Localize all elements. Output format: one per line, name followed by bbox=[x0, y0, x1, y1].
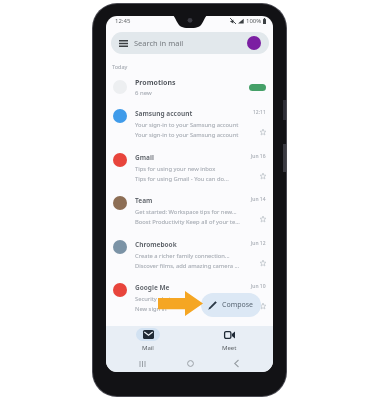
button[interactable]: Team bbox=[106, 191, 273, 234]
button[interactable]: Menu bbox=[111, 32, 269, 54]
staticText: Gmail bbox=[135, 153, 154, 162]
staticText: Mail bbox=[142, 344, 154, 352]
button[interactable]: Mail bbox=[132, 326, 164, 352]
staticText: Jun 16 bbox=[251, 153, 266, 160]
staticText: Jun 10 bbox=[251, 283, 266, 290]
staticText: Discover films, add amazing camera ... bbox=[135, 262, 240, 270]
staticText: Tips for using Gmail - You can do... bbox=[135, 175, 229, 183]
button[interactable]: Google Me bbox=[106, 278, 273, 321]
staticText: Compose bbox=[222, 300, 254, 310]
staticText: 6 new bbox=[135, 89, 152, 97]
staticText: 12:11 bbox=[253, 109, 266, 116]
button[interactable]: Recents bbox=[136, 357, 149, 370]
button[interactable]: Meet bbox=[213, 326, 245, 352]
button[interactable]: Account bbox=[247, 36, 261, 50]
staticText: Tips for using your new inbox bbox=[135, 165, 216, 173]
button[interactable]: Gmail bbox=[106, 148, 273, 191]
other: Menu bbox=[119, 40, 128, 47]
button[interactable]: Home bbox=[184, 357, 197, 370]
staticText: Today bbox=[112, 63, 128, 70]
staticText: Get started: Workspace tips for new... bbox=[135, 208, 237, 216]
staticText: Security alert bbox=[135, 295, 171, 303]
staticText: Google Me bbox=[135, 283, 170, 292]
staticText: Promotions bbox=[135, 78, 176, 88]
button[interactable]: Back bbox=[230, 357, 243, 370]
staticText: 12:45 bbox=[115, 17, 131, 25]
button[interactable]: Samsung account bbox=[106, 104, 273, 147]
staticText: Meet bbox=[222, 344, 237, 352]
staticText: Team bbox=[135, 196, 153, 205]
staticText: 100% bbox=[246, 17, 262, 25]
staticText: Create a richer family connection... bbox=[135, 252, 230, 260]
staticText: New sign in bbox=[135, 305, 167, 313]
staticText: Jun 12 bbox=[251, 240, 266, 247]
staticText: Samsung account bbox=[135, 109, 193, 118]
staticText: Chromebook bbox=[135, 240, 177, 249]
staticText: Your sign-in to your Samsung account bbox=[135, 131, 239, 139]
button[interactable]: Compose bbox=[201, 293, 261, 317]
staticText: Jun 14 bbox=[251, 196, 266, 203]
button[interactable]: Promotions bbox=[106, 75, 273, 99]
staticText: Boost Productivity Keep all of your te..… bbox=[135, 218, 240, 226]
button[interactable]: Chromebook bbox=[106, 235, 273, 278]
staticText: Your sign-in to your Samsung account bbox=[135, 121, 239, 129]
staticText: Search in mail bbox=[134, 38, 184, 48]
